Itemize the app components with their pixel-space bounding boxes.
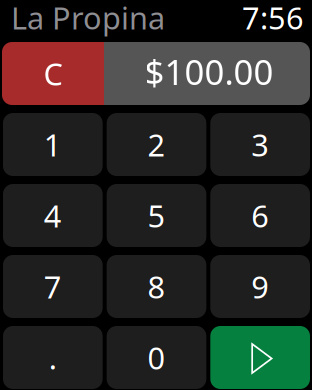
button[interactable]: 6 (210, 184, 310, 247)
button[interactable]: Calculate tip (210, 326, 310, 389)
staticText: 5 (147, 195, 165, 236)
staticText: . (49, 337, 57, 378)
button[interactable]: 1 (3, 113, 103, 176)
button[interactable]: 2 (107, 113, 206, 176)
button[interactable]: 8 (107, 255, 206, 318)
button[interactable]: C (2, 42, 104, 105)
staticText: 8 (147, 266, 165, 307)
staticText: La Propina (11, 0, 165, 38)
button[interactable]: 4 (3, 184, 103, 247)
staticText: $100.00 (144, 48, 273, 94)
staticText: 7:56 (242, 0, 304, 38)
staticText: 4 (44, 195, 62, 236)
button[interactable]: 5 (107, 184, 206, 247)
staticText: 7 (44, 266, 62, 307)
staticText: 1 (44, 124, 62, 165)
button[interactable]: 3 (210, 113, 310, 176)
staticText: 6 (251, 195, 269, 236)
staticText: 3 (251, 124, 269, 165)
staticText: 0 (147, 337, 165, 378)
button[interactable]: 9 (210, 255, 310, 318)
staticText: 2 (147, 124, 165, 165)
button[interactable]: 0 (107, 326, 206, 389)
button[interactable]: 7 (3, 255, 103, 318)
staticText: C (43, 53, 62, 94)
button[interactable]: . (3, 326, 103, 389)
staticText: 9 (251, 266, 269, 307)
